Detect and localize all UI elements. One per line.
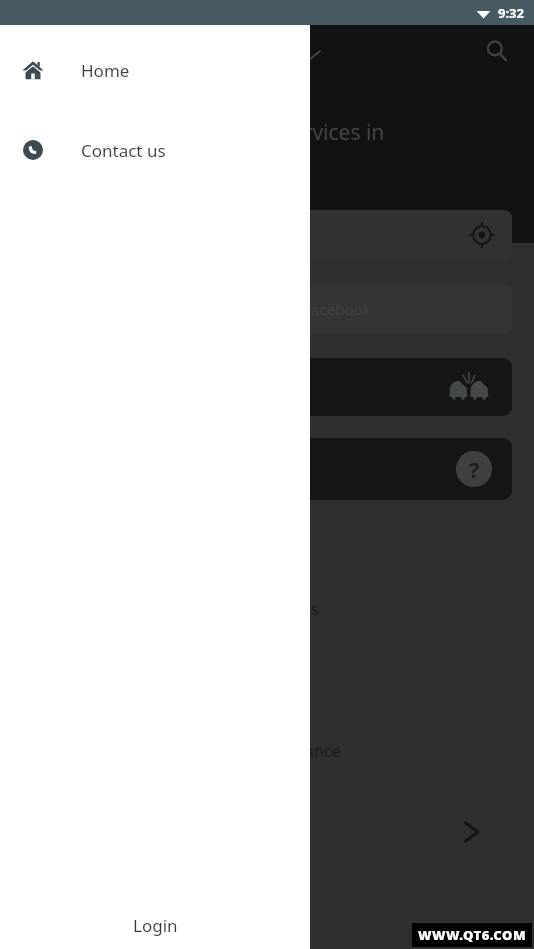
- staticText: Contact us: [81, 139, 166, 162]
- button[interactable]: f: [22, 284, 512, 334]
- staticText: Accident Assistance: [193, 740, 341, 762]
- button[interactable]: Body Services: [22, 513, 512, 637]
- staticText: Find the best automobile services in you…: [30, 118, 490, 176]
- button[interactable]: More: [22, 798, 512, 866]
- other: Home: [22, 59, 44, 81]
- staticText: ?: [469, 454, 480, 484]
- button[interactable]: Contact us: [0, 127, 310, 173]
- staticText: Body Services: [215, 598, 319, 620]
- button[interactable]: Search: [478, 32, 514, 68]
- button[interactable]: Home: [0, 25, 310, 949]
- button[interactable]: Home: [0, 47, 310, 93]
- other: More: [460, 821, 482, 843]
- staticText: 9:32: [498, 4, 524, 22]
- button[interactable]: [0, 0, 534, 949]
- staticText: Login: [133, 914, 178, 937]
- other: Contact us: [23, 140, 43, 160]
- staticText: Home: [81, 59, 130, 82]
- button[interactable]: Met with an accident?: [22, 358, 512, 416]
- button[interactable]: Accident Assistance: [22, 655, 512, 779]
- button[interactable]: Use current location: [466, 219, 498, 251]
- staticText: WWW.QT6.COM: [418, 926, 526, 944]
- staticText: Connect with Facebook: [207, 299, 371, 319]
- button[interactable]: Login: [107, 902, 204, 949]
- button[interactable]: Enter your location: [22, 210, 512, 260]
- button[interactable]: Problem with your car ? We can help: [22, 438, 512, 500]
